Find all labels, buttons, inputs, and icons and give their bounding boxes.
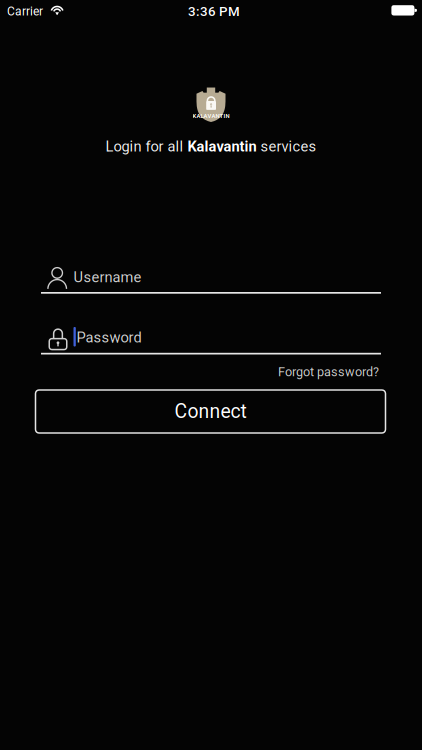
button[interactable]: Username — [41, 267, 381, 301]
staticText: Connect — [174, 400, 246, 423]
button[interactable]: Connect — [35, 390, 385, 433]
staticText: KALAVANTIN — [192, 112, 229, 119]
staticText: 3:36 PM — [188, 4, 240, 19]
staticText: Forgot password? — [278, 365, 379, 379]
staticText: Login for all — [105, 138, 187, 155]
staticText: Carrier — [7, 4, 43, 18]
button[interactable]: Password — [41, 327, 381, 361]
staticText: Kalavantin — [187, 138, 256, 155]
staticText: Username — [73, 269, 141, 286]
button[interactable]: Forgot password? — [269, 364, 379, 380]
staticText: Password — [76, 329, 141, 346]
staticText: services — [256, 138, 316, 155]
